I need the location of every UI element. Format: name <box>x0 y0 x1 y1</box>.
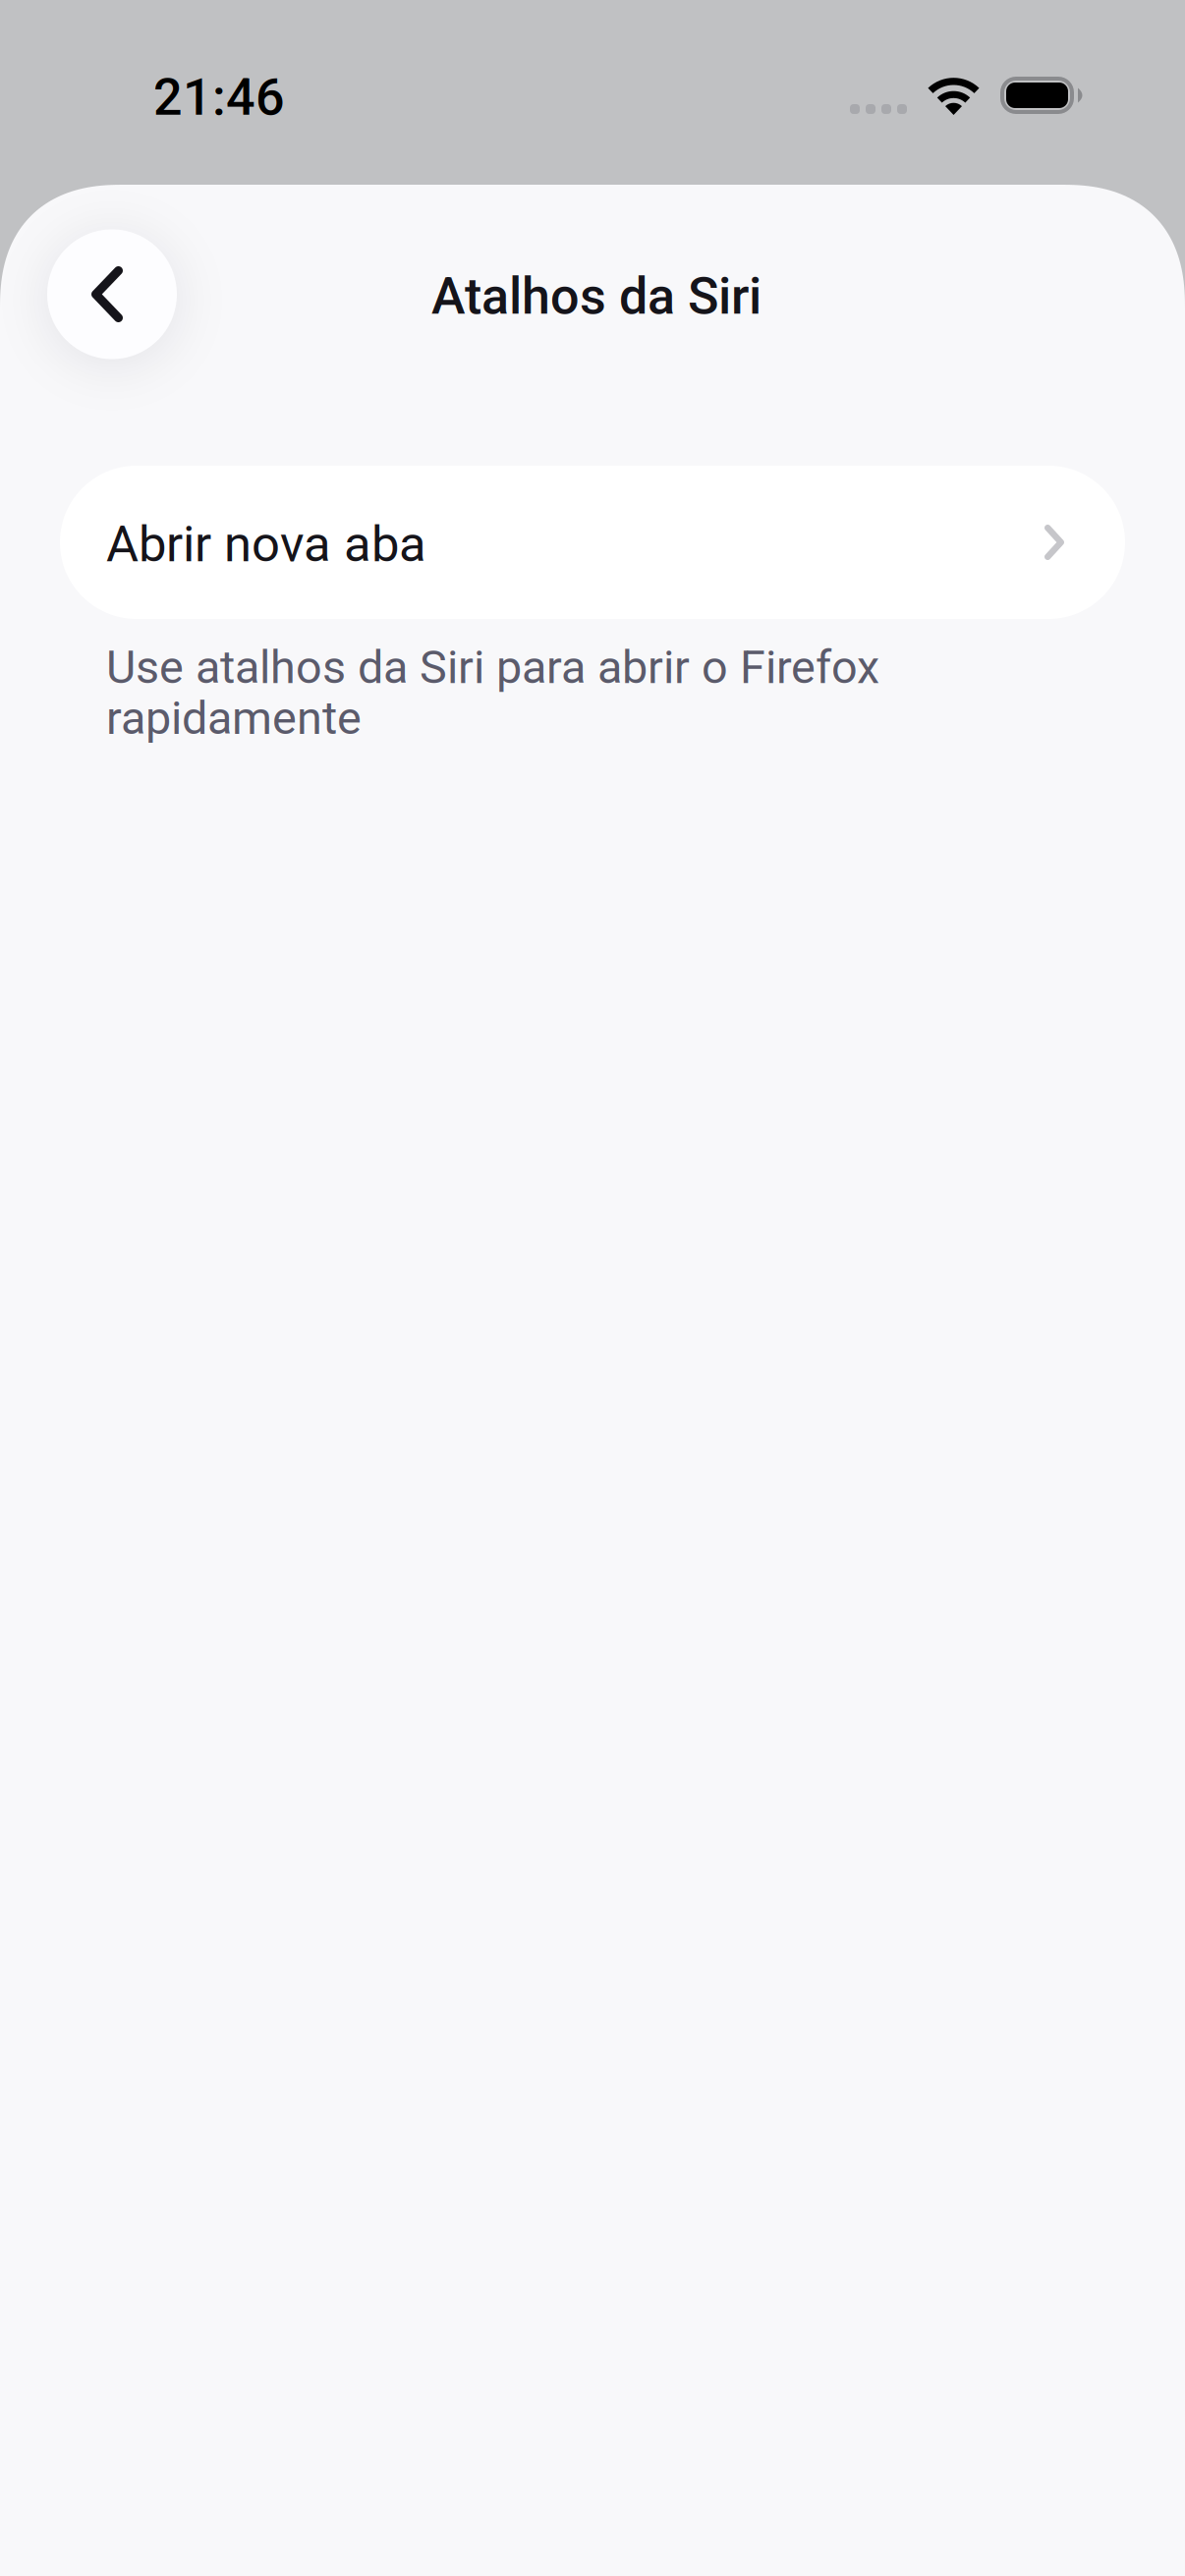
staticText: Use atalhos da Siri para abrir o Firefox… <box>106 641 879 745</box>
staticText: Abrir nova aba <box>106 515 426 573</box>
staticText: Atalhos da Siri <box>431 266 762 326</box>
button[interactable]: Abrir nova aba <box>60 466 1125 619</box>
staticText: 21:46 <box>153 67 285 127</box>
button[interactable]: Back <box>47 229 177 359</box>
